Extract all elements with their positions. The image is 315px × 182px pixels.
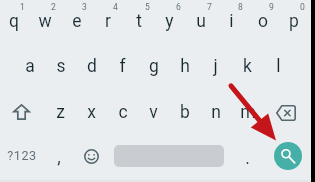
button[interactable]: a [14, 43, 45, 89]
button[interactable]: z [45, 89, 76, 135]
button[interactable]: . [225, 135, 269, 181]
staticText: 1 [20, 2, 25, 12]
staticText: g [149, 56, 159, 77]
button[interactable]: d [76, 43, 107, 89]
staticText: y [165, 11, 174, 32]
staticText: 3 [82, 2, 87, 12]
button[interactable]: m [232, 89, 263, 135]
staticText: n [211, 102, 221, 123]
staticText: z [56, 102, 65, 123]
button[interactable]: t [123, 0, 154, 44]
button[interactable]: e [61, 0, 92, 44]
staticText: m [240, 102, 256, 123]
staticText: . [245, 148, 250, 169]
staticText: k [243, 56, 252, 77]
button[interactable]: l [263, 43, 294, 89]
staticText: w [38, 11, 52, 32]
button[interactable]: , [45, 134, 73, 180]
button[interactable]: x [76, 89, 107, 135]
button[interactable]: y [154, 0, 185, 44]
staticText: e [72, 11, 82, 32]
button[interactable]: b [169, 89, 200, 135]
staticText: 8 [238, 2, 243, 12]
staticText: v [149, 102, 158, 123]
staticText: d [87, 56, 97, 77]
staticText: 0 [300, 2, 305, 12]
staticText: u [196, 11, 206, 32]
staticText: f [119, 56, 126, 77]
staticText: o [258, 11, 268, 32]
button[interactable]: r [92, 0, 123, 44]
button[interactable]: g [138, 43, 169, 89]
button[interactable]: w [29, 0, 60, 44]
staticText: j [213, 56, 218, 77]
button[interactable]: h [169, 43, 200, 89]
button[interactable]: c [107, 89, 138, 135]
staticText: a [25, 56, 35, 77]
button[interactable]: v [138, 89, 169, 135]
staticText: 7 [207, 2, 212, 12]
button[interactable]: s [45, 43, 76, 89]
staticText: q [9, 11, 19, 32]
button[interactable]: i [216, 0, 247, 44]
button[interactable]: Emoji [71, 133, 111, 179]
button[interactable]: o [247, 0, 278, 44]
staticText: x [87, 102, 96, 123]
staticText: i [229, 11, 234, 32]
button[interactable]: q [0, 0, 29, 44]
staticText: 6 [176, 2, 181, 12]
staticText: c [118, 102, 128, 123]
button[interactable]: ?123 [0, 132, 44, 178]
staticText: 4 [113, 2, 118, 12]
button[interactable]: k [232, 43, 263, 89]
button[interactable]: Backspace [263, 90, 309, 136]
staticText: , [57, 147, 61, 168]
staticText: 9 [269, 2, 274, 12]
staticText: b [180, 102, 190, 123]
button[interactable]: f [107, 43, 138, 89]
staticText: l [276, 56, 281, 77]
staticText: r [105, 11, 111, 32]
staticText: h [180, 56, 190, 77]
button[interactable]: Search [266, 133, 309, 179]
button[interactable]: u [185, 0, 216, 44]
staticText: 5 [145, 2, 150, 12]
staticText: p [289, 11, 299, 32]
button[interactable]: j [200, 43, 231, 89]
button[interactable]: p [278, 0, 309, 44]
button[interactable]: Shift [0, 89, 44, 135]
button[interactable]: n [200, 89, 231, 135]
staticText: t [136, 11, 142, 32]
staticText: ?123 [7, 148, 37, 163]
staticText: 2 [51, 2, 56, 12]
staticText: s [56, 56, 66, 77]
